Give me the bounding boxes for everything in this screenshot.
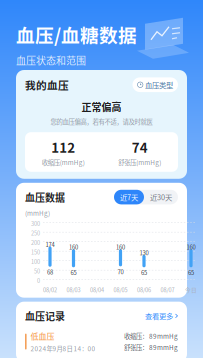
staticText: 65	[141, 268, 147, 277]
staticText: 血压类型	[145, 79, 173, 90]
staticText: 血压状态和范围	[16, 53, 86, 67]
staticText: 我的血压	[25, 77, 69, 92]
staticText: 血压记录	[25, 309, 65, 323]
staticText: 300	[31, 220, 40, 228]
button[interactable]: 血压类型	[132, 77, 178, 92]
staticText: 65	[70, 268, 76, 277]
staticText: 舒张压： 89mmHg	[124, 343, 178, 352]
button[interactable]: 近7天	[114, 190, 144, 204]
staticText: 160	[69, 243, 78, 251]
staticText: 160	[116, 243, 125, 251]
staticText: 250	[31, 229, 40, 237]
staticText: 70	[117, 267, 123, 276]
staticText: 今日	[185, 286, 197, 294]
staticText: 舒张压(mmHg)	[118, 157, 161, 167]
staticText: 08/05	[113, 286, 127, 294]
staticText: 150	[31, 248, 40, 256]
staticText: 收缩压(mmHg)	[42, 157, 85, 167]
staticText: 08/04	[90, 286, 104, 294]
staticText: 65	[188, 268, 194, 277]
staticText: 08/07	[160, 286, 174, 294]
button[interactable]: 查看更多	[145, 311, 178, 321]
staticText: 您的血压偏高，若有不适，请及时就医	[50, 117, 152, 126]
button[interactable]: 近30天	[144, 190, 178, 204]
staticText: 08/02	[43, 286, 57, 294]
staticText: 130	[139, 248, 148, 257]
staticText: 血压/血糖数据	[16, 21, 137, 48]
staticText: 0	[37, 277, 40, 285]
staticText: 100	[31, 258, 40, 266]
staticText: 低血压	[31, 330, 55, 342]
staticText: 200	[31, 239, 40, 247]
staticText: 近30天	[150, 192, 172, 202]
staticText: 血压数据	[25, 190, 65, 204]
staticText: 174	[45, 240, 54, 249]
staticText: 160	[186, 243, 195, 251]
staticText: 08/06	[137, 286, 151, 294]
staticText: (mmHg)	[25, 208, 50, 218]
staticText: 112	[51, 137, 75, 156]
staticText: 74	[132, 137, 148, 156]
staticText: 正常偏高	[81, 99, 121, 114]
staticText: 收缩压： 89mmHg	[124, 331, 178, 341]
staticText: 08/03	[66, 286, 80, 294]
staticText: 近7天	[120, 192, 138, 202]
staticText: 2024年9月8日 14：00	[31, 344, 96, 353]
staticText: 查看更多	[145, 311, 173, 321]
staticText: 68	[47, 268, 53, 276]
staticText: 50	[34, 267, 40, 275]
